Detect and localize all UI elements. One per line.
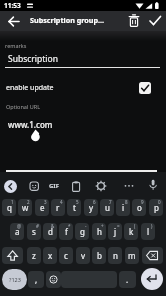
button[interactable]: Subscription: [5, 50, 161, 68]
button[interactable]: v: [76, 247, 90, 264]
button[interactable]: q: [2, 199, 16, 216]
button[interactable]: www.1.com: [6, 117, 160, 167]
button[interactable]: [142, 247, 163, 264]
staticText: Subscription: [8, 53, 58, 65]
button[interactable]: n: [108, 247, 122, 264]
button[interactable]: [6, 13, 22, 29]
staticText: p: [154, 202, 159, 213]
button[interactable]: enable update: [0, 78, 166, 98]
staticText: o: [137, 202, 142, 213]
staticText: (: [134, 223, 136, 229]
button[interactable]: [4, 180, 17, 193]
button[interactable]: [126, 13, 142, 29]
button[interactable]: i: [116, 199, 130, 216]
button[interactable]: h: [92, 223, 106, 240]
button[interactable]: [46, 271, 61, 288]
button[interactable]: [141, 268, 163, 290]
button[interactable]: d: [43, 223, 57, 240]
staticText: GIF: [49, 182, 59, 190]
button[interactable]: f: [59, 223, 73, 240]
staticText: t: [73, 202, 76, 213]
staticText: enable update: [6, 83, 54, 93]
button[interactable]: p: [149, 199, 163, 216]
staticText: m: [128, 250, 136, 261]
staticText: 0: [158, 199, 161, 205]
button[interactable]: g: [75, 223, 89, 240]
staticText: a: [15, 226, 20, 237]
staticText: q: [7, 202, 12, 213]
staticText: ): [151, 223, 153, 229]
staticText: 7: [109, 199, 112, 205]
staticText: &: [51, 223, 55, 229]
button[interactable]: j: [108, 223, 122, 240]
staticText: v: [81, 250, 86, 261]
button[interactable]: [146, 13, 164, 29]
button[interactable]: t: [67, 199, 81, 216]
button[interactable]: x: [43, 247, 57, 264]
staticText: d: [48, 226, 53, 237]
button[interactable]: w: [18, 199, 32, 216]
staticText: remarks: [5, 42, 27, 49]
button[interactable]: GIF: [46, 179, 62, 192]
staticText: s: [32, 226, 36, 237]
staticText: x: [48, 250, 53, 261]
button[interactable]: [147, 178, 159, 193]
button[interactable]: [95, 180, 107, 192]
staticText: y: [89, 202, 94, 213]
staticText: =: [117, 223, 120, 229]
button[interactable]: s: [27, 223, 41, 240]
staticText: j: [114, 226, 117, 237]
staticText: u: [105, 202, 110, 213]
staticText: c: [64, 250, 68, 261]
staticText: .: [126, 274, 129, 285]
button[interactable]: u: [100, 199, 114, 216]
staticText: l: [147, 226, 150, 237]
staticText: k: [129, 226, 134, 237]
staticText: h: [97, 226, 102, 237]
staticText: 3: [44, 199, 47, 205]
button[interactable]: a: [10, 223, 24, 240]
button[interactable]: k: [124, 223, 138, 240]
staticText: f: [65, 226, 68, 237]
button[interactable]: [2, 247, 23, 264]
staticText: #: [36, 223, 39, 229]
staticText: n: [113, 250, 118, 261]
staticText: z: [32, 250, 36, 261]
button[interactable]: [28, 180, 40, 192]
button[interactable]: [122, 180, 138, 191]
staticText: Optional URL: [6, 103, 41, 110]
button[interactable]: m: [125, 247, 139, 264]
staticText: -: [85, 223, 87, 229]
staticText: w: [22, 202, 29, 213]
staticText: e: [40, 202, 45, 213]
button[interactable]: l: [141, 223, 155, 240]
button[interactable]: [139, 82, 151, 94]
staticText: 2: [27, 199, 30, 205]
button[interactable]: e: [35, 199, 49, 216]
staticText: ,: [35, 274, 38, 285]
staticText: r: [56, 202, 60, 213]
button[interactable]: ?123: [2, 269, 27, 290]
button[interactable]: z: [27, 247, 41, 264]
button[interactable]: [70, 180, 82, 192]
staticText: g: [80, 226, 85, 237]
staticText: 8: [125, 199, 128, 205]
staticText: ?123: [9, 276, 21, 283]
staticText: i: [122, 202, 125, 213]
button[interactable]: c: [59, 247, 73, 264]
button[interactable]: y: [84, 199, 98, 216]
button[interactable]: o: [132, 199, 146, 216]
button[interactable]: ,: [28, 271, 44, 288]
staticText: @: [17, 223, 22, 229]
staticText: +: [101, 223, 104, 229]
button[interactable]: .: [119, 271, 136, 288]
staticText: b: [97, 250, 102, 261]
staticText: 11:53: [4, 1, 21, 10]
staticText: 1: [11, 199, 14, 205]
button[interactable]: b: [92, 247, 106, 264]
button[interactable]: r: [51, 199, 65, 216]
staticText: Subscription group...: [30, 15, 105, 25]
staticText: www.1.com: [8, 119, 53, 130]
staticText: 6: [93, 199, 96, 205]
